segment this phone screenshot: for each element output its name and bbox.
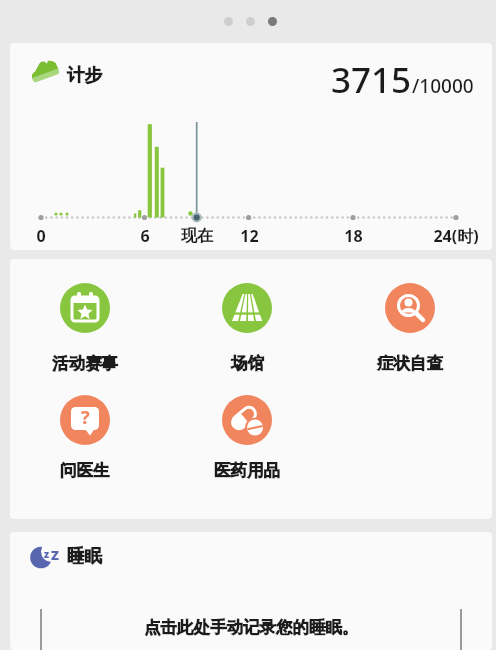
button[interactable]: 计步 <box>10 43 492 250</box>
staticText: 18 <box>344 225 363 247</box>
button[interactable]: 活动赛事 <box>25 283 145 377</box>
staticText: 3715 <box>331 56 412 104</box>
staticText: 现在 <box>181 226 213 246</box>
button[interactable]: ? <box>25 395 145 484</box>
staticText: Z <box>51 546 59 564</box>
staticText: 医药用品 <box>214 460 280 481</box>
button[interactable]: z <box>10 532 492 650</box>
staticText: z <box>44 547 50 561</box>
button[interactable] <box>268 17 277 26</box>
staticText: 0 <box>36 225 46 247</box>
button[interactable]: 医药用品 <box>187 395 307 484</box>
button[interactable]: 症状自查 <box>350 283 470 377</box>
staticText: 症状自查 <box>377 353 443 374</box>
staticText: /10000 <box>412 73 474 99</box>
staticText: 点击此处手动记录您的睡眠。 <box>144 617 359 638</box>
staticText: 场馆 <box>231 353 264 374</box>
staticText: 计步 <box>67 64 102 86</box>
staticText: 睡眠 <box>67 545 102 567</box>
button[interactable]: 场馆 <box>187 283 307 377</box>
staticText: 24(时) <box>433 225 479 247</box>
staticText: 活动赛事 <box>52 353 118 374</box>
button[interactable] <box>224 17 233 26</box>
staticText: 6 <box>140 225 150 247</box>
staticText: 12 <box>240 225 259 247</box>
staticText: ? <box>81 405 90 430</box>
button[interactable] <box>246 17 255 26</box>
staticText: 问医生 <box>60 460 110 481</box>
